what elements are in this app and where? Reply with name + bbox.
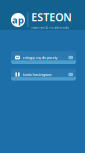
- staticText: ap: [12, 14, 24, 26]
- staticText: konto hostingowe: [22, 72, 51, 77]
- staticText: zaloguj się do poczty: [22, 55, 57, 60]
- button[interactable]: konto hostingowe: [11, 68, 76, 80]
- staticText: ESTEON: [31, 10, 71, 24]
- button[interactable]: zaloguj się do poczty: [11, 51, 76, 64]
- staticText: internet & multimedia: [31, 25, 69, 30]
